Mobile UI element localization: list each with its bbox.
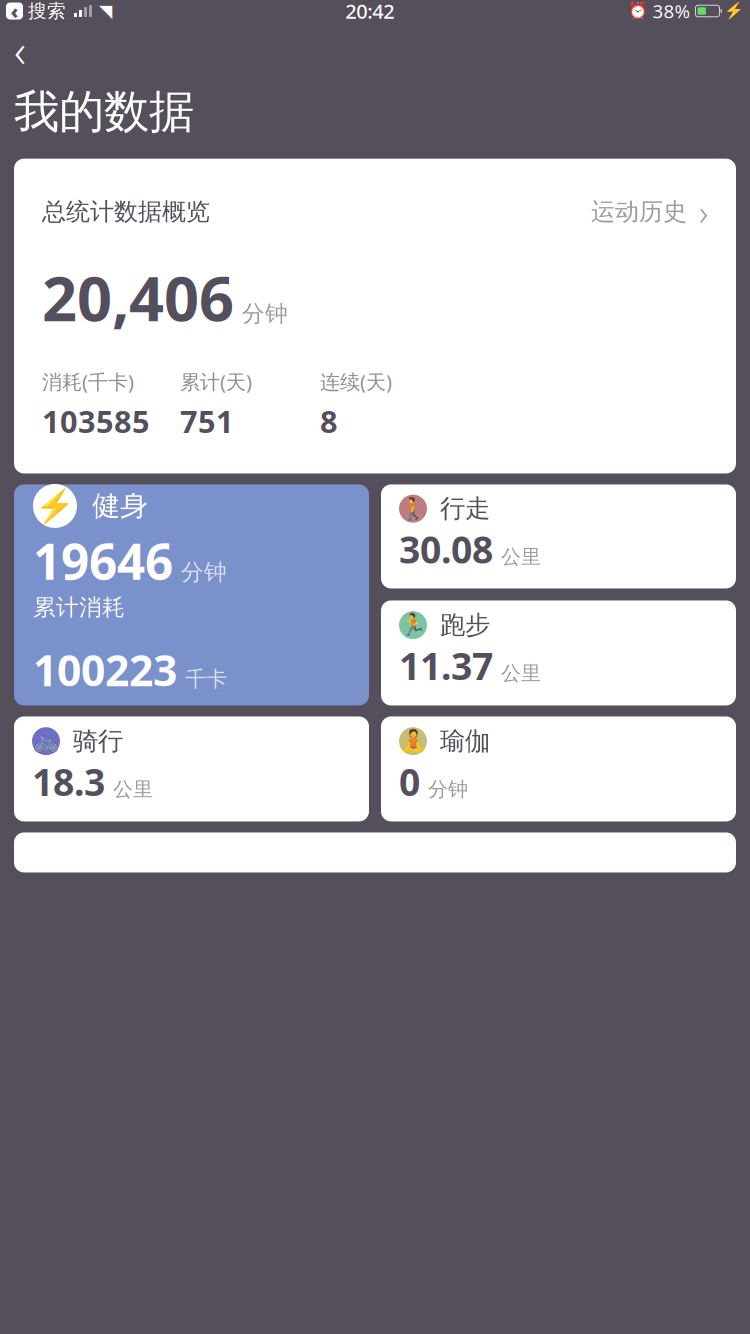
staticText: 健身 — [92, 489, 148, 523]
staticText: ‹ — [10, 0, 18, 24]
staticText: 🏃 — [399, 613, 426, 637]
staticText: 连续(天) — [320, 368, 392, 395]
staticText: › — [699, 189, 708, 235]
staticText: 100223 — [33, 641, 177, 698]
staticText: 公里 — [501, 661, 541, 686]
staticText: ◥ — [99, 1, 112, 21]
staticText: 消耗(千卡) — [42, 368, 134, 395]
staticText: 总统计数据概览 — [42, 197, 210, 226]
staticText: 累计(天) — [180, 368, 252, 395]
button[interactable]: 🏃 — [381, 600, 736, 705]
staticText: 瑜伽 — [440, 726, 490, 757]
staticText: 公里 — [501, 545, 541, 569]
staticText: 30.08 — [399, 524, 493, 574]
button[interactable]: 🚶 — [381, 484, 736, 588]
staticText: 公里 — [113, 777, 153, 802]
staticText: 103585 — [42, 401, 150, 441]
button[interactable]: 🧘 — [381, 716, 736, 821]
staticText: 分钟 — [242, 300, 288, 328]
staticText: 19646 — [33, 528, 173, 593]
staticText: 分钟 — [181, 558, 227, 586]
staticText: 751 — [180, 401, 234, 441]
staticText: 分钟 — [428, 777, 468, 802]
staticText: 行走 — [440, 493, 490, 524]
staticText: 38% — [652, 0, 690, 23]
button[interactable]: 运动历史 — [591, 189, 708, 235]
staticText: 20:42 — [345, 0, 394, 24]
staticText: 骑行 — [73, 726, 123, 757]
staticText: 我的数据 — [14, 84, 194, 140]
staticText: 累计消耗 — [33, 593, 125, 621]
staticText: 搜索 — [28, 0, 66, 22]
staticText: ⚡ — [35, 488, 75, 524]
staticText: ⏰ — [627, 2, 647, 20]
staticText: 千卡 — [185, 666, 227, 692]
staticText: 18.3 — [32, 757, 105, 806]
button[interactable]: Back — [0, 30, 58, 70]
staticText: 🚲 — [32, 729, 59, 753]
staticText: 🚶 — [399, 496, 426, 521]
staticText: 0 — [399, 757, 420, 806]
button[interactable]: ⚡ — [14, 484, 369, 705]
staticText: 🧘 — [399, 729, 426, 753]
button[interactable]: 🚲 — [14, 716, 369, 821]
staticText: 跑步 — [440, 610, 490, 641]
staticText: 运动历史 — [591, 197, 687, 226]
staticText: 20,406 — [42, 257, 234, 338]
staticText: 8 — [320, 401, 338, 441]
staticText: ⚡ — [724, 2, 744, 20]
staticText: ‹ — [14, 20, 26, 80]
staticText: 11.37 — [399, 641, 493, 690]
